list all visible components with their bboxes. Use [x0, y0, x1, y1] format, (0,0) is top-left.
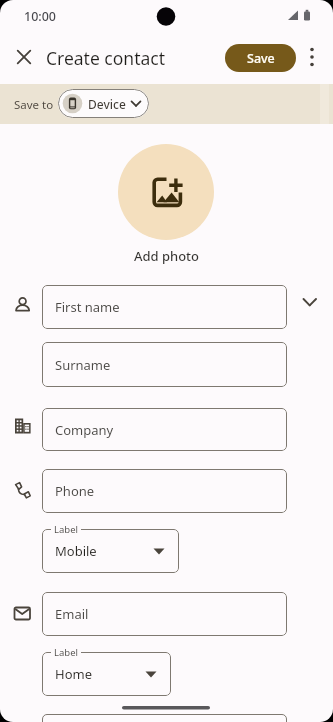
staticText: 10:00	[24, 8, 57, 25]
button[interactable]: First name	[42, 285, 287, 329]
staticText: Save to	[14, 97, 54, 113]
button[interactable]: Save	[225, 44, 296, 72]
button[interactable]	[8, 41, 40, 73]
staticText: Add photo	[0, 247, 333, 265]
button[interactable]: Device	[58, 89, 149, 118]
button[interactable]: Email	[42, 592, 287, 636]
staticText: Mobile	[55, 542, 97, 560]
staticText: Create contact	[46, 46, 166, 70]
staticText: Company	[55, 421, 114, 439]
button[interactable]: Mobile	[42, 529, 179, 573]
staticText: Label	[54, 523, 78, 536]
button[interactable]: Home	[42, 652, 171, 696]
button[interactable]: Surname	[42, 342, 287, 387]
staticText: Device	[88, 96, 126, 112]
staticText: Home	[55, 665, 92, 683]
button[interactable]: Phone	[42, 469, 287, 513]
button[interactable]	[118, 144, 214, 240]
staticText: Label	[54, 646, 78, 659]
button[interactable]: Company	[42, 408, 287, 451]
staticText: Save	[247, 50, 275, 67]
staticText: First name	[55, 298, 120, 316]
button[interactable]	[296, 41, 328, 73]
staticText: Phone	[55, 482, 95, 500]
staticText: Email	[55, 605, 89, 623]
staticText: Surname	[55, 356, 111, 374]
